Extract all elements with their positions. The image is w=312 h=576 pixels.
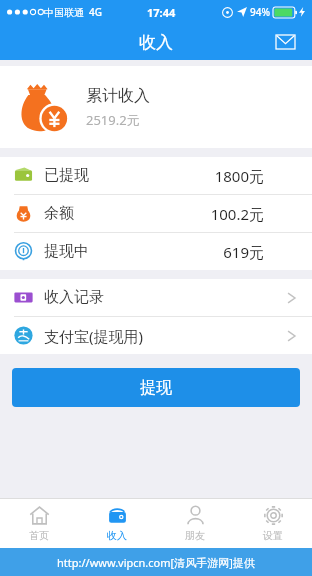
staticText: 朋友 bbox=[185, 529, 205, 542]
staticText: 提现中 bbox=[44, 242, 89, 261]
button[interactable]: 累计收入 bbox=[0, 66, 312, 148]
button[interactable]: 设置 bbox=[234, 499, 312, 548]
button[interactable]: 首页 bbox=[0, 499, 78, 548]
button[interactable]: 已提现 bbox=[0, 157, 312, 194]
button[interactable]: 余额 bbox=[0, 195, 312, 232]
button[interactable]: 提现中 bbox=[0, 233, 312, 270]
staticText: 设置 bbox=[263, 529, 283, 542]
staticText: 17:44 bbox=[147, 5, 176, 20]
staticText: 中国联通 bbox=[44, 6, 84, 19]
staticText: 100.2元 bbox=[210, 204, 264, 224]
button[interactable]: 收入记录 bbox=[0, 279, 312, 316]
staticText: http://www.vipcn.com[清风手游网]提供 bbox=[57, 555, 255, 570]
staticText: 收入 bbox=[139, 32, 173, 53]
staticText: 余额 bbox=[44, 204, 74, 223]
staticText: 2519.2元 bbox=[86, 111, 140, 129]
staticText: 提现 bbox=[140, 378, 172, 398]
staticText: 累计收入 bbox=[86, 86, 150, 106]
staticText: 支付宝(提现用) bbox=[44, 326, 144, 346]
button[interactable]: 提现 bbox=[12, 368, 300, 407]
staticText: 1800元 bbox=[214, 166, 264, 186]
staticText: 619元 bbox=[223, 242, 264, 262]
staticText: 收入 bbox=[107, 529, 127, 542]
button[interactable]: 收入 bbox=[78, 499, 156, 548]
staticText: 4G bbox=[89, 5, 102, 19]
staticText: 首页 bbox=[29, 529, 49, 542]
button[interactable]: Messages bbox=[272, 29, 298, 55]
staticText: 94% bbox=[250, 5, 270, 19]
staticText: 收入记录 bbox=[44, 288, 104, 307]
button[interactable]: 支付宝(提现用) bbox=[0, 317, 312, 354]
staticText: 已提现 bbox=[44, 166, 89, 185]
button[interactable]: 朋友 bbox=[156, 499, 234, 548]
